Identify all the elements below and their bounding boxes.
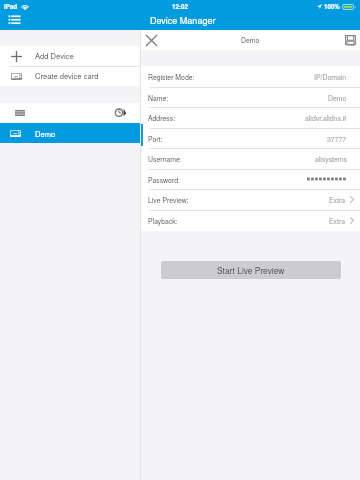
button[interactable]: Save xyxy=(345,35,356,45)
button[interactable]: Start Live Preview xyxy=(161,261,341,279)
staticText: 37777 xyxy=(327,134,347,144)
button[interactable]: Password: xyxy=(141,169,360,190)
button[interactable]: List view xyxy=(15,110,25,116)
staticText: Address: xyxy=(148,113,176,123)
staticText: alisystems xyxy=(315,154,347,164)
button[interactable]: Demo xyxy=(0,123,140,143)
staticText: Password: xyxy=(148,175,180,185)
button[interactable]: Port: xyxy=(141,128,360,149)
staticText: 100% xyxy=(324,2,340,11)
button[interactable]: Create device card xyxy=(0,66,140,86)
staticText: Name: xyxy=(148,93,169,103)
button[interactable]: Menu xyxy=(8,14,21,25)
staticText: 12:02 xyxy=(172,2,188,11)
staticText: IP/Domain xyxy=(314,72,347,82)
staticText: Demo xyxy=(241,35,260,45)
button[interactable]: Add Device xyxy=(0,46,140,66)
staticText: Start Live Preview xyxy=(217,264,285,276)
staticText: iPad xyxy=(4,2,18,11)
staticText: Demo xyxy=(328,93,347,103)
button[interactable]: Playback: xyxy=(141,210,360,231)
staticText: Register Mode: xyxy=(148,72,195,82)
button[interactable]: Address: xyxy=(141,107,360,128)
button[interactable]: Username: xyxy=(141,148,360,169)
button[interactable]: History xyxy=(114,105,127,119)
button[interactable]: Register Mode: xyxy=(141,66,360,87)
staticText: Extra xyxy=(329,216,346,226)
staticText: Username: xyxy=(148,154,182,164)
button[interactable]: Close xyxy=(146,35,157,46)
staticText: Add Device xyxy=(35,50,74,61)
staticText: Extra xyxy=(329,195,346,205)
staticText: Playback: xyxy=(148,216,178,226)
staticText: Live Preview: xyxy=(148,195,189,205)
staticText: Create device card xyxy=(35,70,99,81)
staticText: Device Manager xyxy=(150,14,216,27)
staticText: Demo xyxy=(35,128,56,139)
button[interactable]: Name: xyxy=(141,87,360,108)
staticText: alidvr.alidns.it xyxy=(305,113,347,123)
staticText: Port: xyxy=(148,134,163,144)
button[interactable]: Live Preview: xyxy=(141,189,360,210)
